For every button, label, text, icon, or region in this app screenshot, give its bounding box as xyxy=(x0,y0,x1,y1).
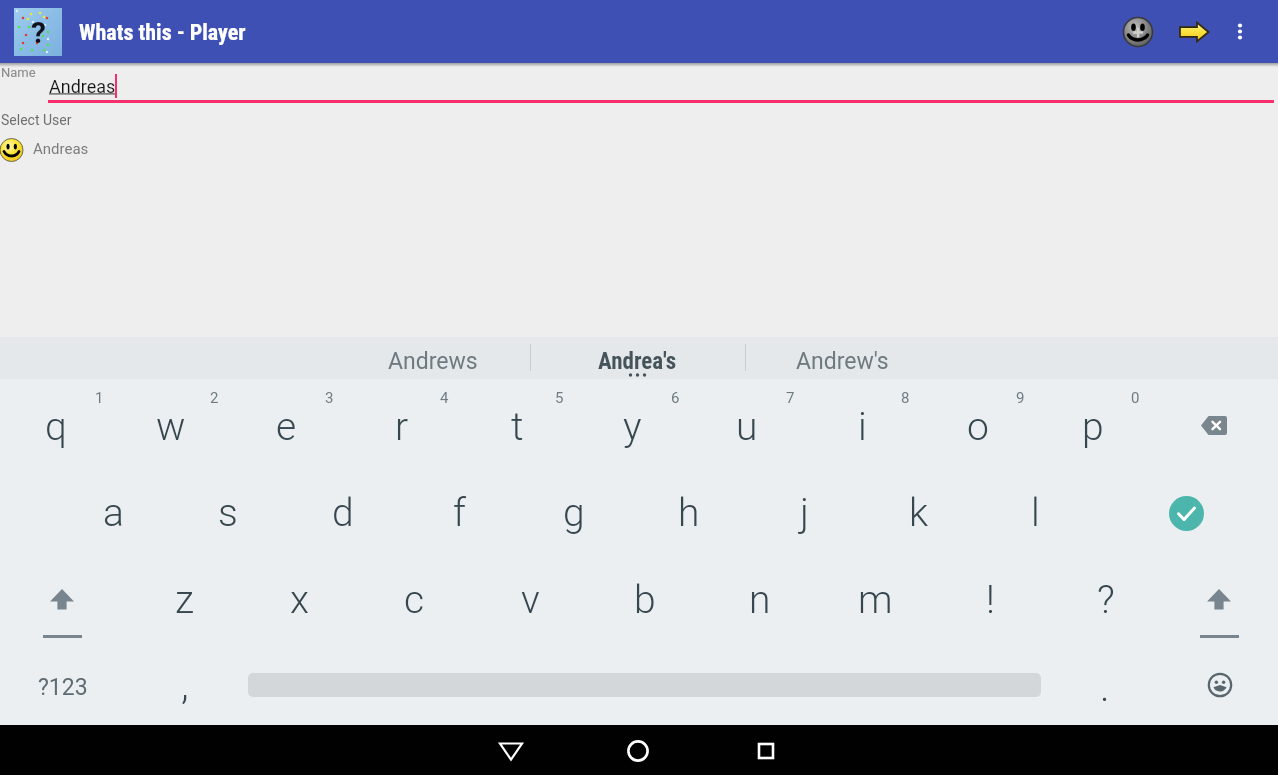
staticText: Andreas xyxy=(33,140,89,158)
staticText: z xyxy=(175,577,194,623)
staticText: , xyxy=(181,662,189,709)
staticText: ! xyxy=(986,577,995,623)
staticText: y xyxy=(623,404,642,450)
staticText: n xyxy=(749,577,771,623)
button[interactable]: 3 xyxy=(314,386,344,410)
staticText: 0 xyxy=(1131,389,1140,407)
button[interactable]: t xyxy=(467,387,567,467)
button[interactable]: i xyxy=(812,387,912,467)
staticText: w xyxy=(156,404,186,450)
staticText: a xyxy=(103,490,124,536)
staticText: 3 xyxy=(325,389,334,407)
button[interactable]: r xyxy=(352,387,452,467)
staticText: k xyxy=(909,490,929,536)
button[interactable]: b xyxy=(595,560,695,640)
button[interactable]: 2 xyxy=(199,386,229,410)
button[interactable]: e xyxy=(236,387,336,467)
button[interactable] xyxy=(1185,570,1253,650)
button[interactable]: 7 xyxy=(775,386,805,410)
button[interactable]: z xyxy=(134,560,234,640)
button[interactable]: v xyxy=(480,560,580,640)
button[interactable]: ? xyxy=(1056,560,1156,640)
button[interactable]: Andrews xyxy=(335,340,531,383)
button[interactable]: 6 xyxy=(660,386,690,410)
button[interactable]: x xyxy=(249,560,349,640)
button[interactable]: p xyxy=(1043,387,1143,467)
staticText: r xyxy=(395,404,409,450)
staticText: s xyxy=(218,490,238,536)
button[interactable] xyxy=(0,138,1278,166)
staticText: Select User xyxy=(1,112,72,128)
button[interactable]: m xyxy=(825,560,925,640)
button[interactable] xyxy=(742,727,790,775)
button[interactable]: Andrew's xyxy=(744,340,940,383)
staticText: g xyxy=(563,490,585,536)
button[interactable]: o xyxy=(928,387,1028,467)
button[interactable]: 1 xyxy=(84,386,114,410)
staticText: 2 xyxy=(210,389,219,407)
button[interactable]: ? xyxy=(14,8,62,56)
button[interactable]: w xyxy=(121,387,221,467)
staticText: x xyxy=(290,577,309,623)
staticText: u xyxy=(736,404,758,450)
staticText: b xyxy=(634,577,656,623)
button[interactable]: d xyxy=(293,473,393,553)
staticText: ?123 xyxy=(38,674,88,701)
button[interactable]: k xyxy=(869,473,969,553)
staticText: 8 xyxy=(901,389,910,407)
staticText: ? xyxy=(1097,577,1115,623)
staticText: v xyxy=(521,577,540,623)
button[interactable]: j xyxy=(754,473,854,553)
staticText: l xyxy=(1031,490,1040,536)
button[interactable]: 8 xyxy=(890,386,920,410)
button[interactable]: a xyxy=(63,473,163,553)
button[interactable]: q xyxy=(6,387,106,467)
button[interactable]: 9 xyxy=(1005,386,1035,410)
staticText: Andreas xyxy=(49,76,116,97)
button[interactable]: . xyxy=(1060,657,1150,717)
staticText: 4 xyxy=(440,389,449,407)
button[interactable]: 0 xyxy=(1120,386,1150,410)
button[interactable] xyxy=(1186,653,1254,721)
staticText: Andrews xyxy=(388,348,478,375)
staticText: 1 xyxy=(95,389,104,407)
button[interactable]: l xyxy=(985,473,1085,553)
button[interactable]: f xyxy=(409,473,509,553)
button[interactable] xyxy=(1226,18,1254,46)
button[interactable]: h xyxy=(639,473,739,553)
staticText: ? xyxy=(31,15,46,50)
button[interactable]: g xyxy=(524,473,624,553)
staticText: d xyxy=(332,490,354,536)
button[interactable] xyxy=(1170,17,1214,47)
button[interactable]: u xyxy=(697,387,797,467)
staticText: Whats this - Player xyxy=(79,20,246,46)
staticText: Name xyxy=(1,65,36,80)
staticText: e xyxy=(276,404,297,450)
button[interactable]: Andrea's xyxy=(539,340,735,383)
button[interactable]: c xyxy=(364,560,464,640)
button[interactable]: 4 xyxy=(429,386,459,410)
staticText: p xyxy=(1082,404,1104,450)
staticText: . xyxy=(1100,664,1110,711)
staticText: c xyxy=(404,577,425,623)
button[interactable] xyxy=(1180,400,1250,454)
staticText: f xyxy=(453,490,466,536)
staticText: 5 xyxy=(555,389,564,407)
button[interactable]: ! xyxy=(940,560,1040,640)
button[interactable]: 5 xyxy=(544,386,574,410)
button[interactable] xyxy=(487,727,535,775)
button[interactable]: , xyxy=(140,655,230,715)
button[interactable]: s xyxy=(178,473,278,553)
staticText: 6 xyxy=(671,389,680,407)
button[interactable]: ?123 xyxy=(8,652,118,722)
button[interactable]: y xyxy=(582,387,682,467)
staticText: Andrew's xyxy=(796,348,889,375)
staticText: q xyxy=(45,404,67,450)
button[interactable] xyxy=(1169,496,1204,531)
button[interactable] xyxy=(28,570,96,650)
button[interactable] xyxy=(1122,16,1154,48)
button[interactable] xyxy=(614,727,662,775)
staticText: Andrea's xyxy=(598,348,677,375)
button[interactable]: n xyxy=(710,560,810,640)
